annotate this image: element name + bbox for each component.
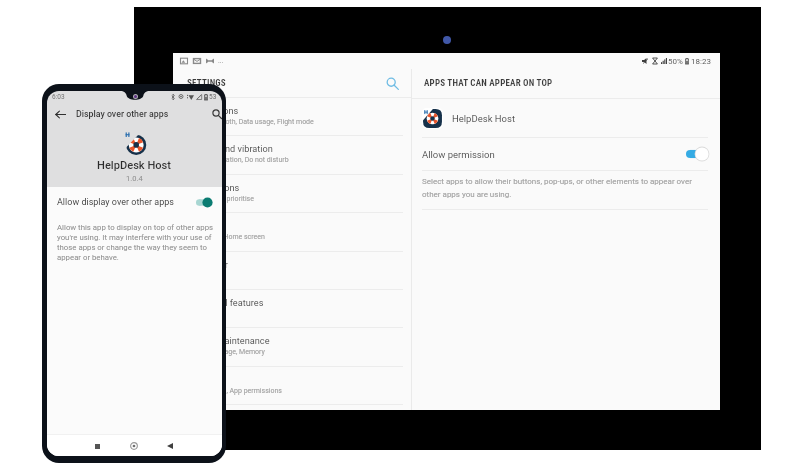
button[interactable]: Sounds and vibration [173, 136, 411, 174]
staticText: Wi-Fi, Bluetooth, Data usage, Flight mod… [187, 118, 314, 126]
button[interactable]: Device maintenance [173, 328, 411, 366]
staticText: Block, allow, prioritise [187, 195, 254, 203]
staticText: 50% [668, 57, 683, 66]
button[interactable]: Search [383, 74, 401, 92]
staticText: Sounds and vibration [187, 143, 273, 154]
staticText: Display [187, 220, 217, 231]
button[interactable]: HelpDesk Host [422, 99, 720, 137]
staticText: Sounds, Vibration, Do not disturb [187, 156, 289, 164]
button[interactable]: Notifications [173, 175, 411, 213]
button[interactable]: Search [206, 106, 222, 122]
staticText: HelpDesk Host [452, 113, 516, 124]
staticText: ... [218, 57, 224, 65]
button[interactable]: Toggle on [686, 147, 709, 161]
staticText: 6:03 [52, 93, 65, 101]
staticText: Allow permission [422, 149, 495, 160]
staticText: Select apps to allow their buttons, pop-… [422, 177, 699, 199]
button[interactable]: Home [127, 439, 141, 453]
button[interactable]: Display [173, 213, 411, 251]
staticText: Allow this app to display on top of othe… [57, 223, 216, 262]
staticText: 1.0.4 [126, 174, 143, 183]
staticText: Notifications [187, 182, 240, 193]
button[interactable]: Apps [173, 367, 411, 405]
button[interactable]: Back [163, 439, 177, 453]
staticText: SETTINGS [187, 78, 226, 89]
staticText: Device maintenance [187, 335, 270, 346]
staticText: HelpDesk Host [97, 159, 172, 172]
staticText: Allow display over other apps [57, 197, 175, 208]
staticText: Advanced features [187, 297, 264, 308]
staticText: APPS THAT CAN APPEAR ON TOP [424, 78, 553, 89]
button[interactable]: Back [52, 106, 68, 122]
button[interactable]: Connections [173, 98, 411, 136]
staticText: Default apps, App permissions [187, 387, 282, 395]
button[interactable]: Advanced features [173, 290, 411, 328]
button[interactable]: Wallpaper [173, 252, 411, 290]
staticText: Battery, Storage, Memory [187, 348, 265, 356]
button[interactable]: Allow display over other apps [57, 187, 213, 217]
staticText: Brightness, Home screen [187, 233, 265, 241]
staticText: 53 [209, 93, 217, 101]
button[interactable]: Recents [90, 439, 104, 453]
staticText: 18:23 [691, 57, 711, 66]
staticText: Wallpaper [187, 259, 228, 270]
button[interactable]: Toggle on [196, 197, 213, 208]
staticText: Connections [187, 105, 239, 116]
button[interactable]: Allow permission [422, 138, 709, 170]
staticText: Display over other apps [76, 109, 169, 119]
